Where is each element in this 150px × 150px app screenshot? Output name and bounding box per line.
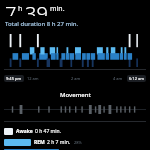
staticText: 0 h 47 min. (35, 128, 61, 135)
staticText: 12 am (27, 76, 39, 81)
staticText: 6:12 am (129, 76, 144, 81)
staticText: 39 (25, 0, 48, 16)
staticText: 4 am (113, 76, 123, 81)
staticText: 7 (5, 0, 17, 16)
staticText: min. (50, 4, 65, 14)
button[interactable]: 6:12 am (127, 75, 146, 82)
button[interactable]: Awake (4, 127, 146, 135)
staticText: Awake (16, 128, 33, 135)
button[interactable]: Movement during sleep (4, 105, 146, 114)
staticText: 2 am (71, 76, 81, 81)
button[interactable]: Sleep stages hypnogram (4, 34, 146, 67)
staticText: Movement (60, 91, 91, 99)
staticText: REM (34, 139, 45, 146)
button[interactable]: 9:45 pm (4, 75, 24, 82)
staticText: h (18, 4, 23, 14)
staticText: 9:45 pm (6, 76, 22, 81)
staticText: 28% (74, 140, 82, 145)
button[interactable]: Light (4, 149, 146, 150)
staticText: 2 h 7 min. (47, 139, 71, 146)
button[interactable]: REM (4, 138, 146, 146)
staticText: Total duration 8 h 27 min. (5, 20, 79, 28)
